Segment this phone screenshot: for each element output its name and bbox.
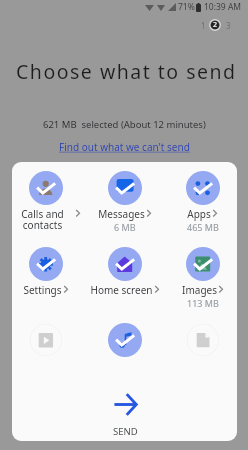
button[interactable]: Images bbox=[163, 247, 243, 309]
staticText: 465 MB bbox=[187, 221, 219, 233]
staticText: 113 MB bbox=[187, 297, 219, 309]
staticText: 3 bbox=[226, 20, 231, 31]
button[interactable]: Messages bbox=[85, 171, 165, 233]
staticText: Choose what to send bbox=[16, 58, 237, 85]
staticText: 1 bbox=[201, 20, 206, 31]
staticText: SEND bbox=[113, 425, 138, 438]
staticText: Messages bbox=[98, 207, 145, 221]
button[interactable]: Calls and contacts bbox=[6, 171, 86, 232]
button[interactable]: Audio bbox=[85, 323, 165, 357]
button[interactable]: Find out what we can't send bbox=[59, 140, 190, 154]
staticText: 6 MB bbox=[114, 221, 136, 233]
button[interactable]: Send bbox=[95, 393, 155, 438]
button[interactable]: Home screen bbox=[85, 247, 165, 297]
button[interactable]: Media bbox=[6, 323, 86, 357]
staticText: Settings bbox=[23, 283, 62, 297]
staticText: 10:39 AM bbox=[204, 1, 242, 13]
button[interactable]: Apps bbox=[163, 171, 243, 233]
staticText: Home screen bbox=[90, 283, 153, 297]
button[interactable]: Media bbox=[163, 323, 243, 357]
staticText: Calls and contacts bbox=[11, 207, 74, 232]
staticText: 2 bbox=[213, 20, 218, 30]
staticText: 621 MB selected (About 12 minutes) bbox=[43, 118, 206, 131]
staticText: 71% bbox=[178, 1, 195, 13]
staticText: Apps bbox=[187, 207, 211, 221]
staticText: Images bbox=[182, 283, 217, 297]
button[interactable]: Settings bbox=[6, 247, 86, 297]
